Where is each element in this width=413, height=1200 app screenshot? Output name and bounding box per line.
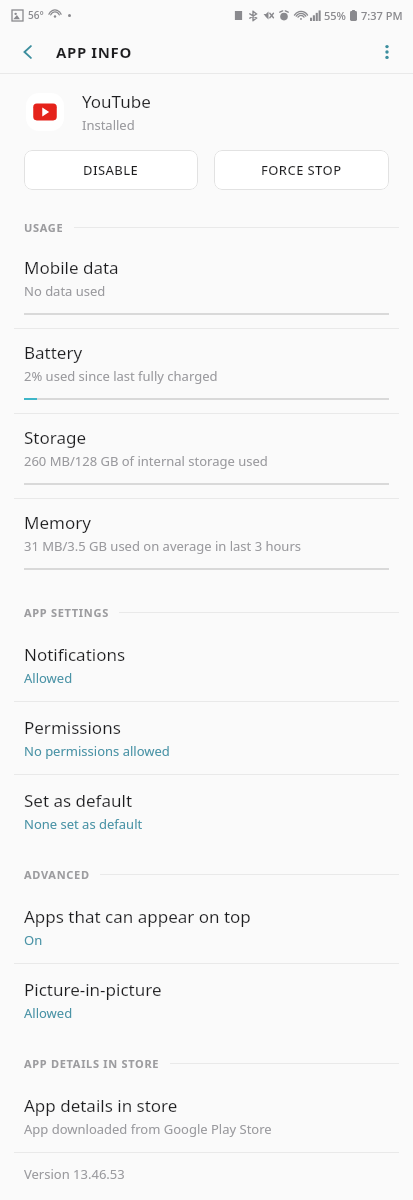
button[interactable]: FORCE STOP <box>214 150 389 190</box>
staticText: Allowed <box>24 1004 73 1022</box>
button[interactable]: Apps that can appear on top <box>0 891 413 963</box>
button[interactable]: Storage <box>0 414 413 498</box>
staticText: APP INFO <box>56 42 132 62</box>
button[interactable]: App details in store <box>0 1080 413 1152</box>
staticText: No data used <box>24 282 106 300</box>
staticText: App details in store <box>24 1094 178 1117</box>
staticText: USAGE <box>24 220 64 235</box>
staticText: APP DETAILS IN STORE <box>24 1056 160 1071</box>
staticText: ADVANCED <box>24 867 90 882</box>
button[interactable]: Notifications <box>0 629 413 701</box>
button[interactable]: Picture-in-picture <box>0 964 413 1036</box>
staticText: 56° <box>28 8 44 22</box>
button[interactable]: More options <box>367 32 407 72</box>
staticText: FORCE STOP <box>261 161 342 179</box>
staticText: 260 MB/128 GB of internal storage used <box>24 452 268 470</box>
button[interactable]: Mobile data <box>0 244 413 328</box>
staticText: Set as default <box>24 789 133 812</box>
staticText: None set as default <box>24 815 143 833</box>
staticText: 31 MB/3.5 GB used on average in last 3 h… <box>24 537 302 555</box>
staticText: 55% <box>324 8 346 23</box>
staticText: 2% used since last fully charged <box>24 367 218 385</box>
button[interactable]: Permissions <box>0 702 413 774</box>
staticText: Memory <box>24 511 91 534</box>
staticText: On <box>24 931 43 949</box>
staticText: YouTube <box>82 90 151 113</box>
button[interactable]: YouTube <box>0 74 413 142</box>
staticText: Notifications <box>24 643 126 666</box>
staticText: Picture-in-picture <box>24 978 162 1001</box>
staticText: Apps that can appear on top <box>24 905 251 928</box>
staticText: 7:37 PM <box>361 8 403 23</box>
staticText: Permissions <box>24 716 121 739</box>
staticText: APP SETTINGS <box>24 605 109 620</box>
staticText: App downloaded from Google Play Store <box>24 1120 272 1138</box>
staticText: Version 13.46.53 <box>24 1165 125 1183</box>
staticText: No permissions allowed <box>24 742 170 760</box>
staticText: Mobile data <box>24 256 119 279</box>
staticText: Allowed <box>24 669 73 687</box>
button[interactable]: Back <box>8 32 48 72</box>
staticText: Installed <box>82 116 135 134</box>
staticText: DISABLE <box>83 161 139 179</box>
staticText: Storage <box>24 426 87 449</box>
staticText: Battery <box>24 341 83 364</box>
button[interactable]: Battery <box>0 329 413 413</box>
button[interactable]: Set as default <box>0 775 413 847</box>
button[interactable]: DISABLE <box>24 150 198 190</box>
button[interactable]: Memory <box>0 499 413 583</box>
